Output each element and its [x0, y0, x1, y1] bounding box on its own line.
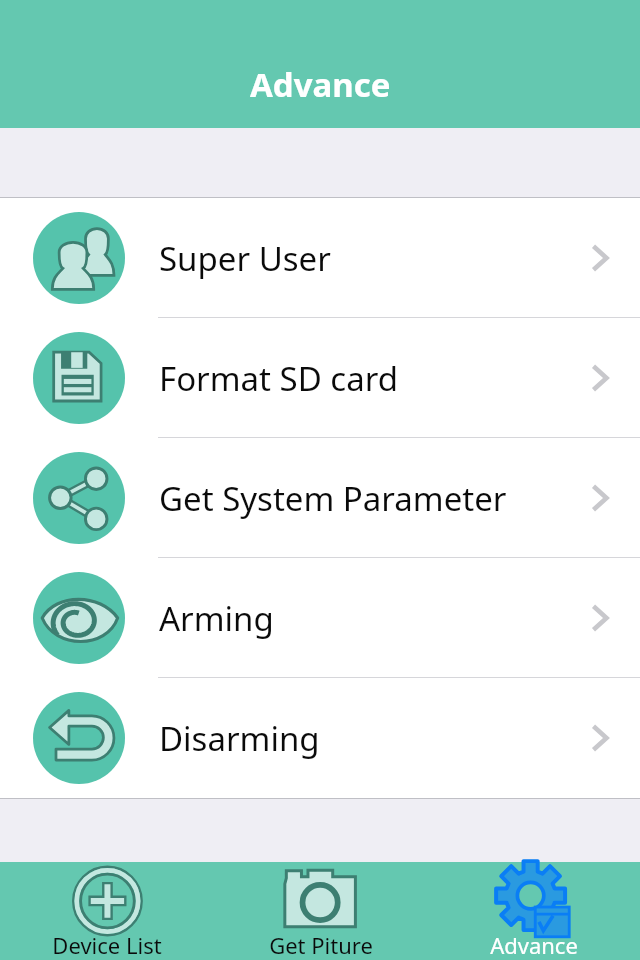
- staticText: Device List: [52, 930, 162, 960]
- button[interactable]: Format SD card: [0, 318, 640, 438]
- button[interactable]: Arming: [0, 558, 640, 678]
- staticText: Advance: [490, 930, 578, 960]
- staticText: Get Piture: [269, 930, 373, 960]
- button[interactable]: Disarming: [0, 678, 640, 798]
- button[interactable]: Get System Parameter: [0, 438, 640, 558]
- button[interactable]: Device List: [0, 862, 214, 960]
- staticText: Super User: [159, 236, 331, 281]
- staticText: Advance: [250, 62, 391, 107]
- staticText: Get System Parameter: [159, 476, 507, 521]
- button[interactable]: Get Piture: [214, 862, 427, 960]
- staticText: Format SD card: [159, 356, 398, 401]
- button[interactable]: Super User: [0, 198, 640, 318]
- staticText: Arming: [159, 596, 274, 641]
- button[interactable]: Advance: [427, 862, 640, 960]
- staticText: Disarming: [159, 716, 320, 761]
